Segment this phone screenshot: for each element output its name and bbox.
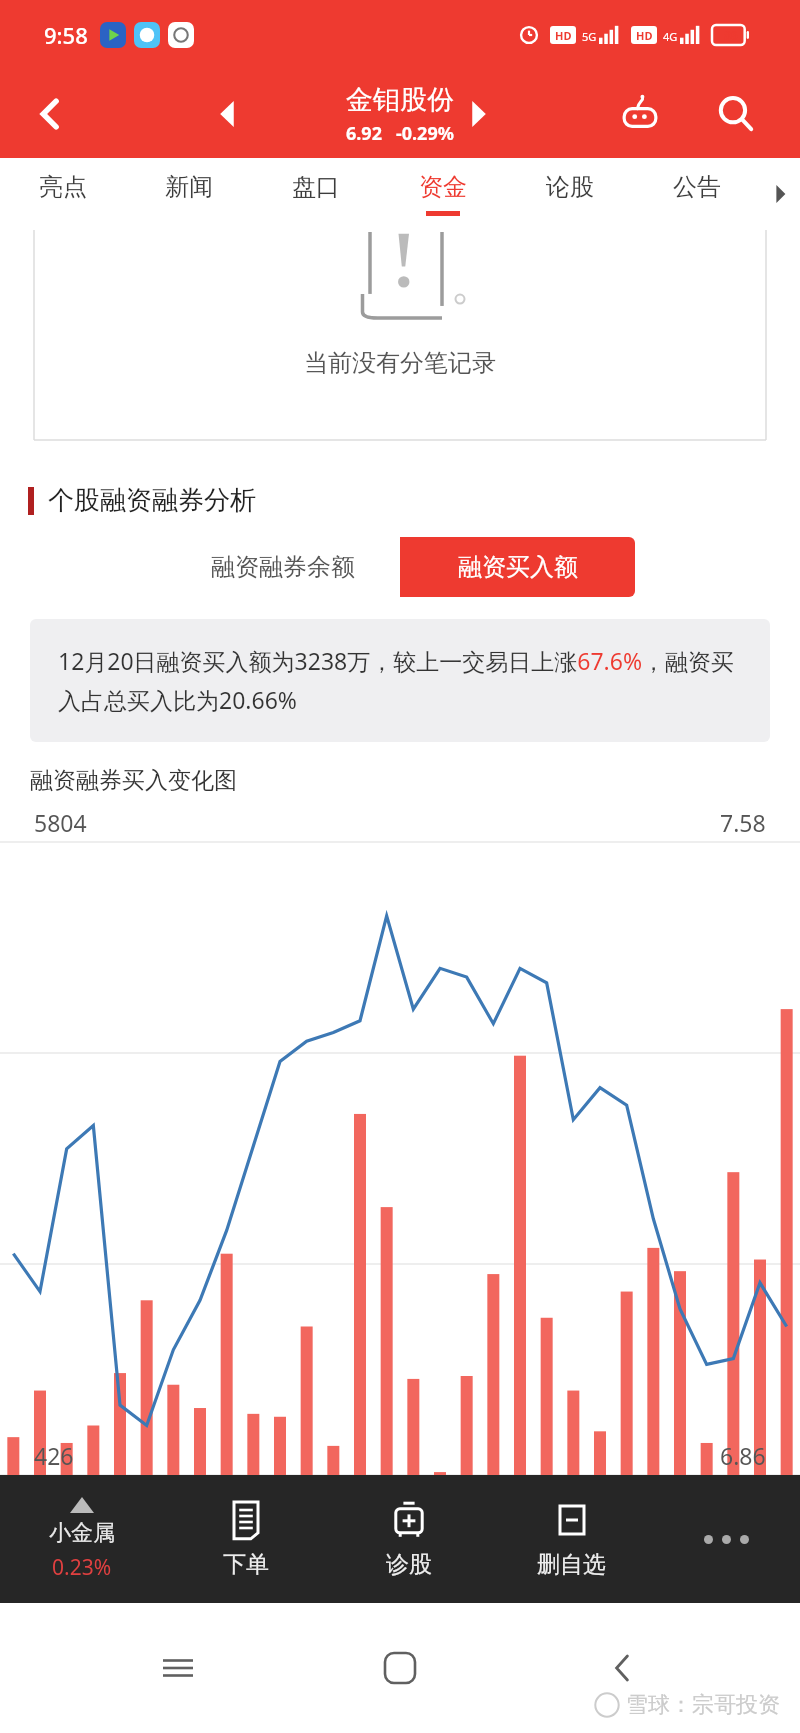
- staticText: 金钼股份: [346, 83, 454, 117]
- staticText: 雪球：宗哥投资: [626, 1691, 780, 1719]
- button[interactable]: 新闻: [126, 158, 252, 230]
- staticText: 盘口: [292, 172, 340, 202]
- button[interactable]: 盘口: [252, 158, 379, 230]
- staticText: HD: [636, 28, 653, 43]
- staticText: 论股: [546, 172, 594, 202]
- button[interactable]: 亮点: [0, 158, 126, 230]
- staticText: 小金属: [49, 1519, 115, 1547]
- button[interactable]: 公告: [633, 158, 760, 230]
- staticText: 5G: [582, 29, 597, 44]
- staticText: 下单: [223, 1550, 269, 1579]
- button[interactable]: Back: [594, 1640, 650, 1696]
- staticText: 当前没有分笔记录: [304, 348, 496, 378]
- button[interactable]: Previous stock: [200, 86, 256, 142]
- staticText: 新闻: [165, 172, 213, 202]
- staticText: 亮点: [39, 172, 87, 202]
- staticText: 删自选: [537, 1550, 606, 1579]
- button[interactable]: Home: [372, 1640, 428, 1696]
- button[interactable]: 小金属: [0, 1475, 164, 1603]
- button[interactable]: More tabs: [760, 158, 800, 230]
- staticText: 融资融券余额: [211, 552, 355, 582]
- staticText: 融资买入额: [458, 552, 578, 582]
- staticText: 诊股: [386, 1550, 432, 1579]
- staticText: 4G: [663, 29, 678, 44]
- staticText: 0.23%: [52, 1553, 112, 1582]
- button[interactable]: AI assistant: [610, 84, 670, 144]
- staticText: HD: [555, 28, 572, 43]
- staticText: -0.29%: [396, 121, 454, 146]
- button[interactable]: Search: [706, 84, 766, 144]
- staticText: 6.86: [720, 1440, 766, 1471]
- button[interactable]: Recents: [150, 1640, 206, 1696]
- staticText: 9:58: [44, 20, 88, 50]
- staticText: 6.92: [346, 121, 382, 146]
- button[interactable]: Next stock: [450, 86, 506, 142]
- staticText: 公告: [673, 172, 721, 202]
- staticText: 5804: [34, 807, 87, 838]
- button[interactable]: 诊股: [327, 1475, 490, 1603]
- button[interactable]: More: [653, 1475, 800, 1603]
- staticText: 资金: [419, 172, 467, 202]
- button[interactable]: 下单: [164, 1475, 327, 1603]
- staticText: 融资融券买入变化图: [30, 766, 237, 795]
- button[interactable]: 论股: [506, 158, 633, 230]
- button[interactable]: Back: [18, 82, 82, 146]
- staticText: 12月20日融资买入额为3238万，较上一交易日上涨67.6%，融资买入占总买入…: [58, 645, 742, 716]
- button[interactable]: 资金: [379, 158, 506, 230]
- staticText: 426: [34, 1440, 74, 1471]
- staticText: 7.58: [720, 807, 766, 838]
- button[interactable]: 删自选: [490, 1475, 653, 1603]
- button[interactable]: 融资买入额: [400, 537, 635, 597]
- button[interactable]: 融资融券余额: [165, 537, 400, 597]
- staticText: 个股融资融券分析: [48, 484, 256, 517]
